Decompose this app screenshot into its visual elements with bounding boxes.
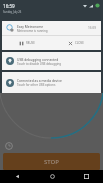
button[interactable]: STOP	[3, 153, 100, 170]
button[interactable]: Timer	[5, 142, 13, 150]
staticText: PAUSE	[26, 41, 35, 45]
staticText: Touch to disable USB debugging	[17, 62, 62, 66]
staticText: Sunday, July 26	[3, 10, 22, 14]
button[interactable]: Back	[0, 170, 35, 183]
staticText: Easy Metronome	[17, 24, 44, 28]
staticText: Touch for other USB options	[17, 83, 56, 87]
button[interactable]: Easy Metronome	[2, 21, 101, 35]
button[interactable]: USB debugging connected	[2, 52, 101, 70]
staticText: CLOSE	[75, 41, 84, 45]
button[interactable]: CLOSE	[51, 36, 101, 50]
button[interactable]: Recents	[69, 170, 103, 183]
staticText: STOP	[44, 158, 59, 166]
staticText: Metronome is running	[17, 29, 48, 33]
staticText: 16:59	[3, 3, 15, 9]
button[interactable]: Connected as a media device	[2, 72, 101, 93]
staticText: USB debugging connected	[17, 57, 59, 61]
staticText: Connected as a media device	[17, 78, 62, 82]
staticText: 16:59	[88, 26, 97, 30]
button[interactable]: PAUSE	[2, 36, 51, 50]
button[interactable]: Home	[35, 170, 69, 183]
